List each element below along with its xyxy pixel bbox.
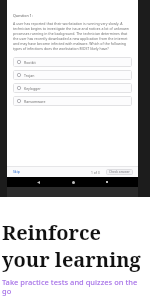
staticText: Rootkit — [24, 60, 36, 65]
button[interactable]: Back — [34, 178, 42, 186]
staticText: Ransomware — [24, 99, 46, 104]
button[interactable]: Trojan — [13, 70, 132, 80]
staticText: Check answer — [109, 170, 130, 174]
button[interactable]: Skip — [12, 168, 21, 175]
button[interactable]: Check answer — [106, 169, 133, 175]
button[interactable]: Home — [69, 178, 77, 186]
staticText: Question 1: — [13, 13, 33, 18]
button[interactable]: Keylogger — [13, 83, 132, 93]
button[interactable]: Rootkit — [13, 57, 132, 67]
button[interactable]: Ransomware — [13, 96, 132, 106]
staticText: Skip — [13, 169, 20, 174]
staticText: A user has reported that their workstati… — [13, 21, 132, 51]
staticText: Keylogger — [24, 86, 41, 91]
staticText: Take practice tests and quizzes on the g… — [2, 277, 144, 296]
staticText: Reinforce — [2, 219, 101, 246]
staticText: 1 of 3 — [91, 170, 100, 174]
staticText: Trojan — [24, 73, 35, 78]
staticText: your learning — [2, 246, 141, 273]
button[interactable]: Recent apps — [103, 178, 111, 186]
